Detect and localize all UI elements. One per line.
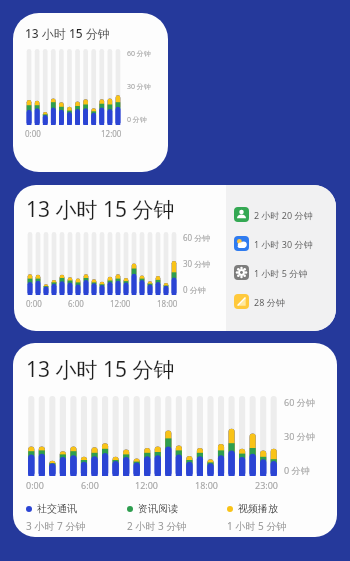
staticText: 30 分钟 xyxy=(183,258,211,269)
other: App icon xyxy=(234,294,249,309)
staticText: 视频播放 xyxy=(238,502,278,515)
staticText: 0 分钟 xyxy=(127,115,147,125)
button[interactable]: 社交通讯 xyxy=(26,502,127,533)
staticText: 0:00 xyxy=(26,479,44,491)
other: App icon xyxy=(234,207,249,222)
staticText: 1 小时 5 分钟 xyxy=(227,519,287,533)
button[interactable]: 13 小时 15 分钟 xyxy=(13,343,337,537)
staticText: 2 小时 3 分钟 xyxy=(127,519,187,533)
staticText: 60 分钟 xyxy=(127,49,151,59)
staticText: 60 分钟 xyxy=(183,232,211,243)
staticText: 18:00 xyxy=(195,479,219,491)
staticText: 60 分钟 xyxy=(284,396,315,408)
staticText: 18:00 xyxy=(157,298,178,309)
staticText: 0:00 xyxy=(25,128,41,139)
staticText: 28 分钟 xyxy=(254,296,285,308)
staticText: 0:00 xyxy=(26,298,42,309)
staticText: 资讯阅读 xyxy=(138,502,178,515)
staticText: 3 小时 7 分钟 xyxy=(26,519,86,533)
staticText: 12:00 xyxy=(110,298,131,309)
staticText: 2 小时 20 分钟 xyxy=(254,209,313,221)
button[interactable]: 13 小时 15 分钟 xyxy=(14,185,336,331)
other: App icon xyxy=(234,236,249,251)
button[interactable]: 视频播放 xyxy=(227,502,327,533)
other: App icon xyxy=(234,265,249,280)
staticText: 13 小时 15 分钟 xyxy=(26,355,175,384)
staticText: 1 小时 5 分钟 xyxy=(254,267,308,279)
staticText: 0 分钟 xyxy=(284,464,310,476)
staticText: 12:00 xyxy=(135,479,159,491)
button[interactable]: App icon xyxy=(226,234,336,253)
staticText: 13 小时 15 分钟 xyxy=(26,195,175,224)
staticText: 13 小时 15 分钟 xyxy=(25,25,110,41)
button[interactable]: App icon xyxy=(226,263,336,282)
staticText: 6:00 xyxy=(81,479,99,491)
button[interactable]: App icon xyxy=(226,205,336,224)
staticText: 社交通讯 xyxy=(37,502,77,515)
staticText: 0 分钟 xyxy=(183,284,206,295)
staticText: 30 分钟 xyxy=(127,82,151,92)
button[interactable]: 资讯阅读 xyxy=(127,502,227,533)
staticText: 30 分钟 xyxy=(284,430,315,442)
button[interactable]: App icon xyxy=(226,292,336,311)
staticText: 23:00 xyxy=(255,479,279,491)
button[interactable]: 13 小时 15 分钟 xyxy=(13,13,168,172)
staticText: 6:00 xyxy=(68,298,84,309)
staticText: 12:00 xyxy=(101,128,122,139)
staticText: 1 小时 30 分钟 xyxy=(254,238,313,250)
